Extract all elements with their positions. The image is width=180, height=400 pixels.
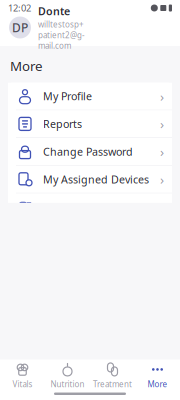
staticText: Nutrition: [50, 379, 84, 389]
staticText: Change Password: [43, 144, 133, 159]
button[interactable]: Vitals: [0, 361, 45, 391]
staticText: ›: [160, 143, 164, 160]
staticText: My Profile: [43, 89, 92, 103]
staticText: Call History: [43, 200, 100, 214]
staticText: ›: [160, 170, 164, 188]
staticText: Donte: [38, 4, 70, 18]
staticText: Vitals: [12, 379, 32, 389]
staticText: 12:02: [8, 2, 31, 14]
button[interactable]: My Assigned Devices: [8, 166, 172, 193]
button[interactable]: Change Password: [8, 138, 172, 166]
staticText: ›: [160, 87, 164, 105]
staticText: Treatment: [93, 379, 132, 389]
staticText: My Assigned Devices: [43, 172, 149, 186]
button[interactable]: Reports: [8, 110, 172, 138]
staticText: More: [10, 57, 43, 75]
button[interactable]: More: [135, 361, 180, 391]
staticText: DP: [12, 19, 28, 35]
staticText: ›: [160, 198, 164, 216]
staticText: More: [147, 379, 167, 389]
button[interactable]: Nutrition: [45, 361, 90, 391]
staticText: willtestosp+patient2@gmail.com: [38, 19, 85, 51]
button[interactable]: Call History: [8, 193, 172, 221]
button[interactable]: My Profile: [8, 83, 172, 110]
staticText: ›: [160, 115, 164, 133]
staticText: Reports: [43, 117, 82, 131]
button[interactable]: Treatment: [90, 361, 135, 391]
